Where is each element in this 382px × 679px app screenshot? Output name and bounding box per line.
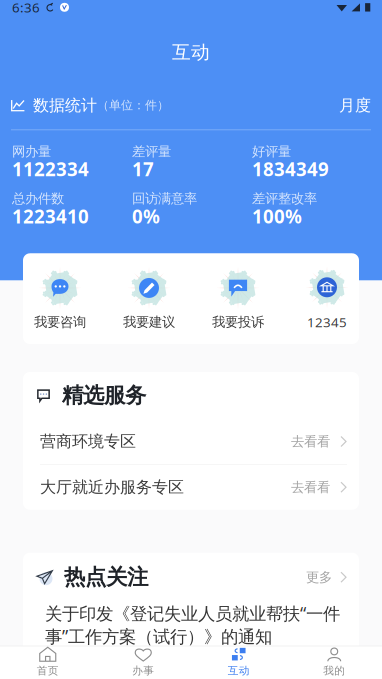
button[interactable]: 更多 — [306, 569, 347, 585]
staticText: 回访满意率 — [132, 190, 197, 207]
staticText: 首页 — [37, 664, 59, 677]
staticText: 1122334 — [12, 157, 89, 181]
button[interactable]: 月度 — [339, 95, 371, 115]
staticText: 0% — [132, 204, 160, 229]
staticText: 大厅就近办服务专区 — [40, 477, 184, 497]
staticText: 关于印发《登记失业人员就业帮扶“一件事”工作方案（试行）》的通知 — [45, 602, 340, 648]
staticText: 我要投诉 — [212, 314, 264, 330]
staticText: 热点关注 — [64, 564, 148, 590]
staticText: 差评整改率 — [252, 190, 317, 207]
button[interactable]: 我的 — [286, 646, 382, 677]
staticText: 12345 — [307, 313, 347, 331]
button[interactable]: 12345 — [282, 265, 371, 331]
staticText: 100% — [252, 204, 302, 229]
button[interactable]: 我要咨询 — [15, 266, 104, 330]
staticText: 更多 — [306, 569, 332, 585]
staticText: 总办件数 — [12, 190, 64, 207]
staticText: 互动 — [172, 41, 210, 64]
staticText: 17 — [132, 157, 154, 181]
staticText: 差评量 — [132, 143, 171, 160]
button[interactable]: 办事 — [95, 646, 191, 677]
staticText: 月度 — [339, 95, 371, 115]
staticText: 6:36 — [12, 0, 40, 16]
staticText: 好评量 — [252, 143, 291, 160]
staticText: 我要咨询 — [34, 314, 86, 330]
staticText: 网办量 — [12, 143, 51, 160]
staticText: 办事 — [132, 664, 154, 677]
staticText: 我的 — [323, 664, 345, 677]
staticText: 营商环境专区 — [40, 432, 136, 451]
staticText: 互动 — [228, 664, 250, 677]
button[interactable]: 大厅就近办服务专区 — [23, 465, 359, 510]
staticText: 去看看 — [291, 433, 330, 450]
button[interactable]: 营商环境专区 — [23, 419, 359, 464]
staticText: （单位：件） — [97, 98, 169, 113]
staticText: 我要建议 — [123, 314, 175, 330]
button[interactable]: 首页 — [0, 646, 95, 677]
staticText: 1834349 — [252, 157, 329, 181]
staticText: 精选服务 — [62, 382, 146, 409]
button[interactable]: 我要投诉 — [193, 266, 282, 330]
button[interactable]: 我要建议 — [104, 266, 193, 330]
staticText: 去看看 — [291, 479, 330, 495]
button[interactable]: 互动 — [191, 646, 286, 677]
staticText: 数据统计 — [33, 95, 97, 115]
staticText: 1223410 — [12, 204, 89, 229]
